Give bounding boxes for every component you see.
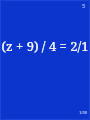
staticText: 1/30: [79, 110, 87, 115]
button[interactable]: (z + 9) / 4 = 2/1: [0, 37, 90, 55]
button[interactable]: Slide footer: [79, 110, 87, 115]
button[interactable]: Page number: [82, 3, 85, 10]
staticText: 5: [82, 3, 85, 10]
staticText: (z + 9) / 4 = 2/1: [0, 37, 90, 55]
